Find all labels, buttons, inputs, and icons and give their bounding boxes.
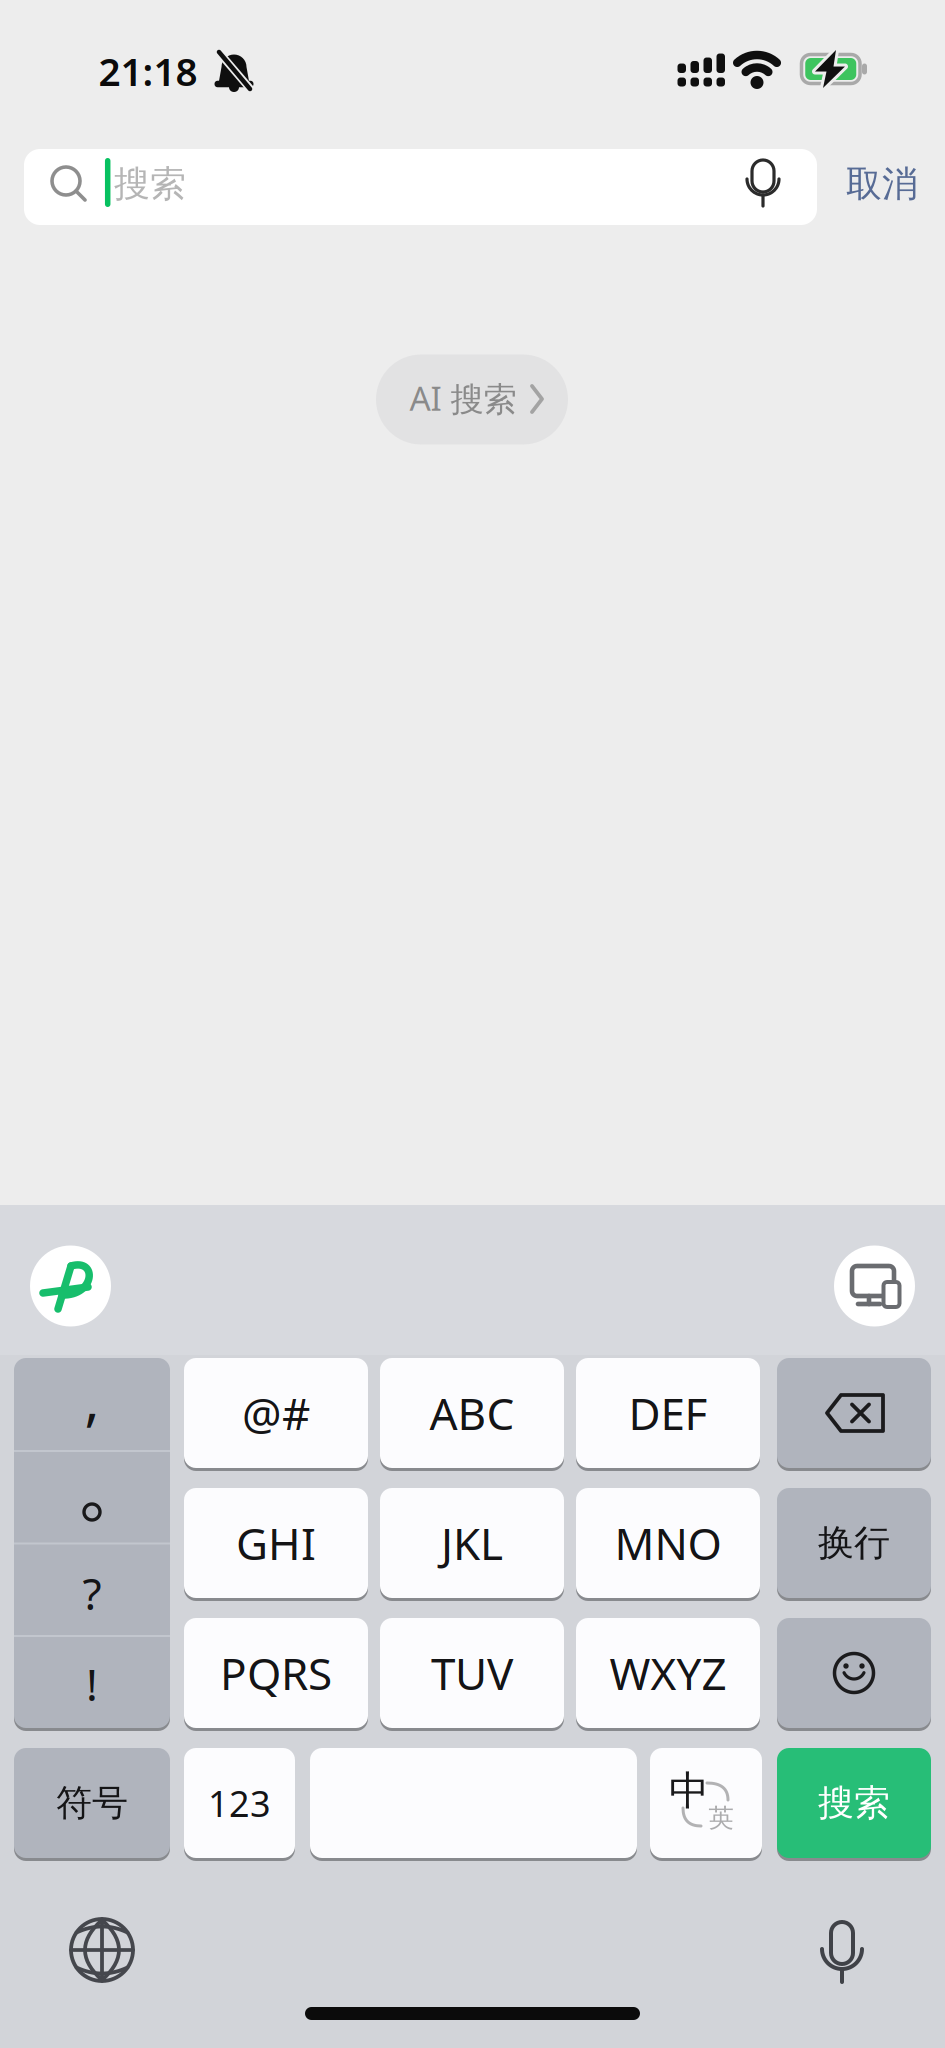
button[interactable]: PQRS: [184, 1618, 368, 1731]
staticText: PQRS: [220, 1644, 332, 1702]
button[interactable]: [650, 1748, 762, 1861]
button[interactable]: [834, 1245, 915, 1326]
staticText: 英: [708, 1802, 733, 1833]
staticText: !: [86, 1655, 98, 1713]
button[interactable]: @#: [184, 1358, 368, 1471]
button[interactable]: 符号: [14, 1748, 170, 1861]
button[interactable]: MNO: [576, 1488, 760, 1601]
button[interactable]: ABC: [380, 1358, 564, 1471]
button[interactable]: DEF: [576, 1358, 760, 1471]
button[interactable]: [30, 1245, 111, 1326]
button[interactable]: [310, 1748, 637, 1861]
staticText: ABC: [429, 1384, 514, 1442]
button[interactable]: JKL: [380, 1488, 564, 1601]
button[interactable]: [800, 1908, 884, 1992]
staticText: 123: [208, 1779, 271, 1827]
button[interactable]: GHI: [184, 1488, 368, 1601]
button[interactable]: TUV: [380, 1618, 564, 1731]
button[interactable]: WXYZ: [576, 1618, 760, 1731]
staticText: 取消: [846, 162, 918, 206]
button[interactable]: [60, 1908, 144, 1992]
button[interactable]: [24, 149, 817, 225]
staticText: GHI: [236, 1514, 316, 1572]
button[interactable]: 123: [184, 1748, 295, 1861]
staticText: JKL: [441, 1514, 503, 1572]
button[interactable]: 搜索: [777, 1748, 931, 1861]
staticText: 搜索: [114, 162, 186, 206]
staticText: DEF: [628, 1384, 707, 1442]
button[interactable]: [376, 354, 568, 444]
staticText: 中: [669, 1766, 709, 1815]
staticText: 符号: [56, 1781, 128, 1825]
staticText: 搜索: [818, 1781, 890, 1825]
button[interactable]: [14, 1358, 170, 1731]
staticText: ,: [84, 1362, 99, 1436]
staticText: 21:18: [98, 45, 197, 97]
staticText: WXYZ: [609, 1644, 726, 1702]
staticText: ?: [82, 1564, 101, 1622]
staticText: 换行: [818, 1521, 890, 1565]
button[interactable]: 取消: [846, 162, 918, 206]
staticText: MNO: [614, 1514, 721, 1572]
button[interactable]: 换行: [777, 1488, 931, 1601]
staticText: AI 搜索: [409, 376, 516, 420]
button[interactable]: [777, 1618, 931, 1731]
staticText: @#: [242, 1384, 310, 1442]
button[interactable]: [777, 1358, 931, 1471]
staticText: TUV: [431, 1644, 513, 1702]
